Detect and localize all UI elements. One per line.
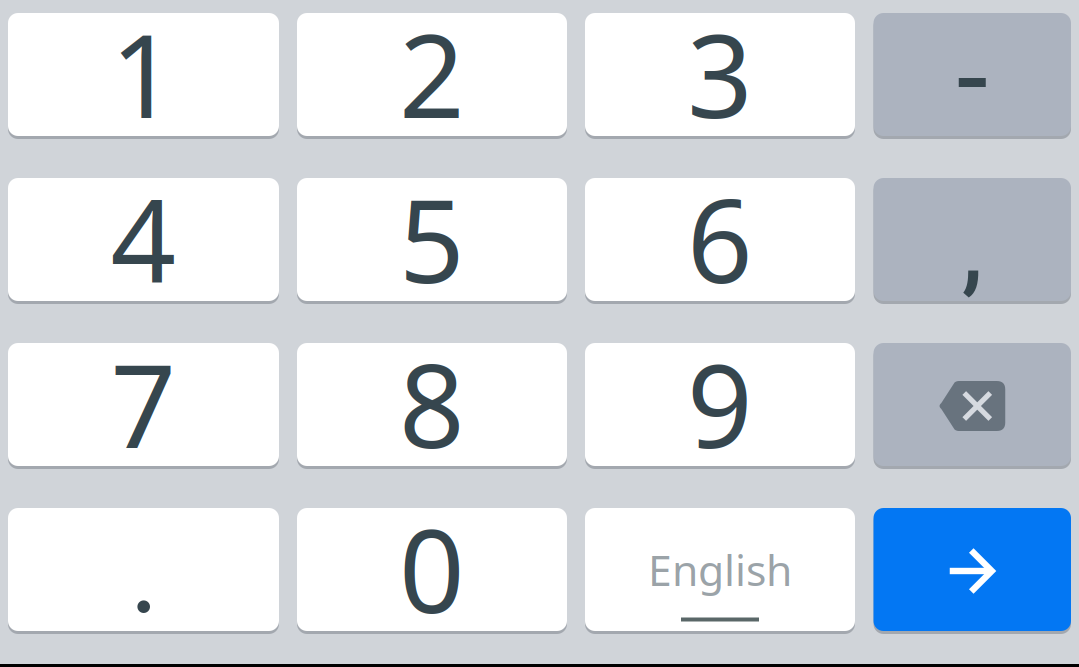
button[interactable]: 6 [585,178,855,301]
staticText: 0 [399,492,465,645]
staticText: English [648,541,792,598]
button[interactable]: 7 [8,343,279,466]
staticText: 2 [399,0,465,150]
button[interactable]: 5 [297,178,567,301]
button[interactable]: 8 [297,343,567,466]
button[interactable]: 1 [8,13,279,136]
button[interactable]: Decimal point [8,508,279,631]
staticText: 7 [110,327,176,480]
staticText: 1 [110,0,176,150]
button[interactable]: 4 [8,178,279,301]
button[interactable]: Minus [873,13,1071,136]
button[interactable]: 0 [297,508,567,631]
button[interactable]: 2 [297,13,567,136]
button[interactable]: Submit [873,508,1071,631]
staticText: 3 [687,0,753,150]
staticText: 5 [399,162,465,315]
staticText: 6 [687,162,753,315]
button[interactable]: English [585,508,855,631]
staticText: 9 [687,327,753,480]
button[interactable]: 3 [585,13,855,136]
staticText: 8 [399,327,465,480]
button[interactable]: Comma [873,178,1071,301]
button[interactable]: 9 [585,343,855,466]
staticText: 4 [110,162,176,315]
button[interactable]: Delete [873,343,1071,466]
